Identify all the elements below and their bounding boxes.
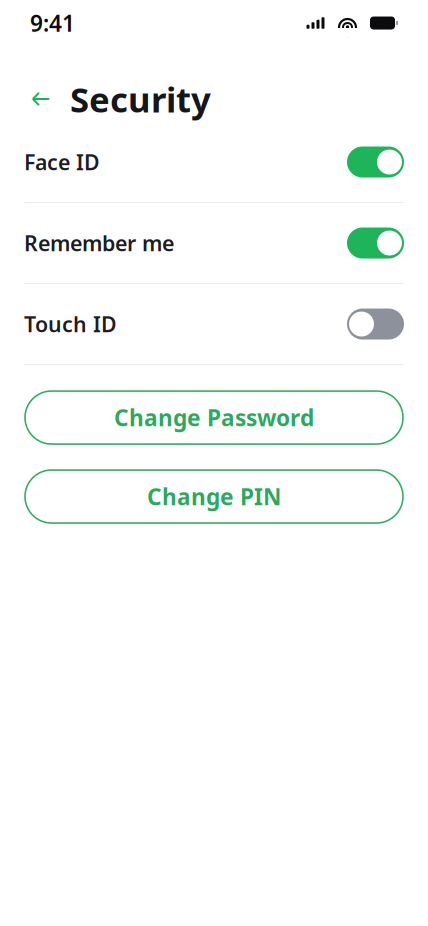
button[interactable]: Back bbox=[24, 82, 58, 116]
staticText: Remember me bbox=[24, 229, 174, 257]
staticText: Face ID bbox=[24, 148, 100, 176]
staticText: Touch ID bbox=[24, 310, 117, 338]
staticText: Security bbox=[70, 76, 211, 122]
button[interactable]: Touch ID bbox=[0, 284, 428, 364]
staticText: Change PIN bbox=[147, 481, 281, 512]
button[interactable]: Change Password bbox=[25, 391, 403, 444]
button[interactable]: Remember me bbox=[0, 203, 428, 283]
button[interactable]: Change PIN bbox=[25, 470, 403, 523]
staticText: Change Password bbox=[114, 402, 314, 433]
staticText: 9:41 bbox=[30, 8, 75, 38]
button[interactable]: Face ID bbox=[0, 122, 428, 202]
